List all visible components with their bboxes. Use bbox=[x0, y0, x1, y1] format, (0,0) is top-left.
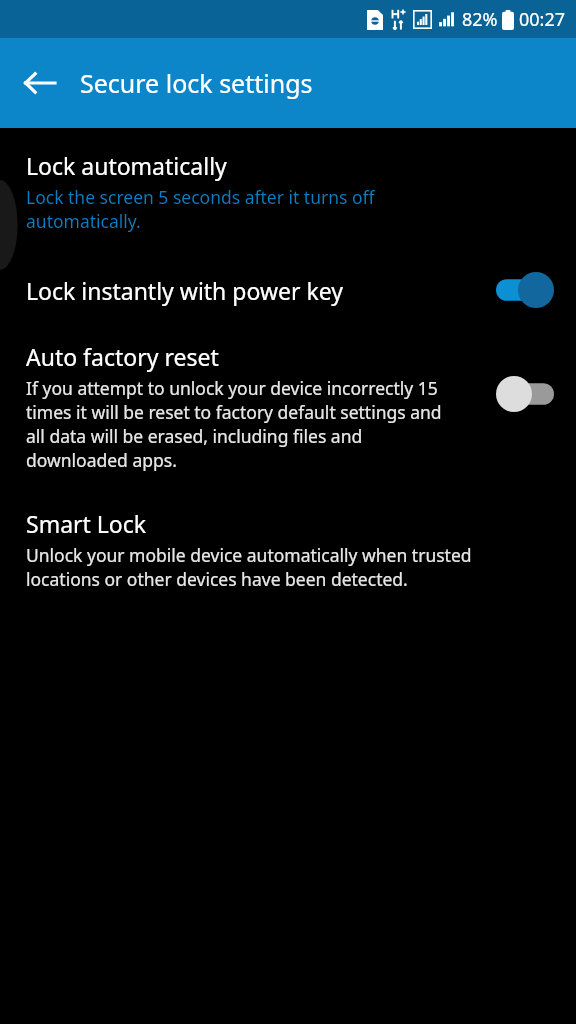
button[interactable]: Auto factory reset bbox=[496, 375, 554, 413]
button[interactable]: Lock automatically bbox=[0, 128, 576, 233]
staticText: Lock automatically bbox=[26, 150, 227, 181]
staticText: 82% bbox=[462, 7, 498, 32]
button[interactable]: Lock instantly with power key bbox=[0, 269, 576, 311]
button[interactable]: Back bbox=[10, 53, 70, 113]
button[interactable]: Smart Lock bbox=[0, 508, 576, 607]
staticText: Lock the screen 5 seconds after it turns… bbox=[26, 185, 408, 233]
button[interactable]: Auto factory reset bbox=[0, 339, 576, 474]
button[interactable]: Lock instantly with power key bbox=[496, 271, 554, 309]
staticText: Auto factory reset bbox=[26, 341, 219, 372]
staticText: Secure lock settings bbox=[80, 66, 313, 100]
staticText: 00:27 bbox=[519, 7, 566, 32]
staticText: Lock instantly with power key bbox=[26, 275, 343, 306]
staticText: If you attempt to unlock your device inc… bbox=[26, 376, 460, 472]
staticText: Unlock your mobile device automatically … bbox=[26, 543, 503, 591]
staticText: Smart Lock bbox=[26, 508, 147, 539]
